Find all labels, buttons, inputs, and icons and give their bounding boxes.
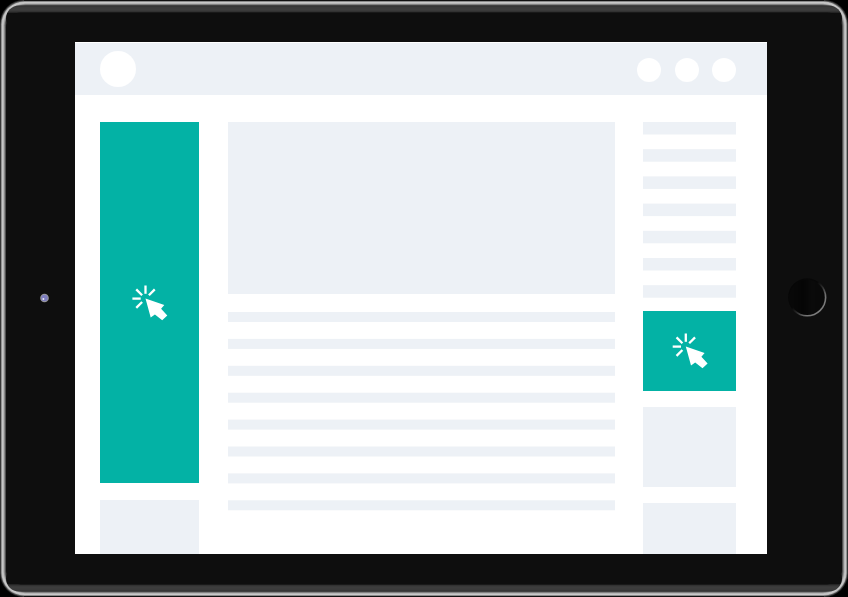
button[interactable]: Notifications bbox=[675, 58, 699, 82]
button[interactable]: Suggestions list bbox=[643, 122, 736, 325]
button[interactable]: Article body bbox=[228, 312, 615, 510]
button[interactable]: Search bbox=[637, 58, 661, 82]
button[interactable]: Primary action bbox=[100, 122, 199, 483]
button[interactable]: Call to action bbox=[643, 311, 736, 391]
button[interactable]: Account bbox=[100, 51, 136, 87]
button[interactable]: More options bbox=[712, 58, 736, 82]
